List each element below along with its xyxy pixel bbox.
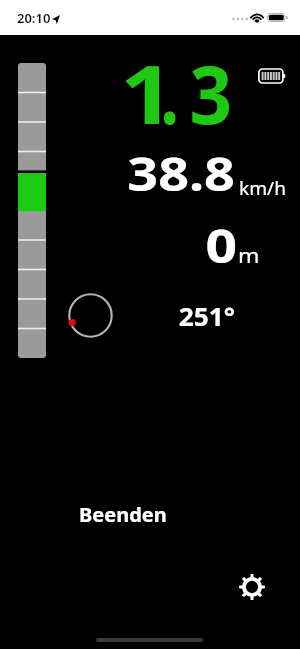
staticText: 1 xyxy=(108,38,174,147)
button[interactable]: Beenden xyxy=(62,500,184,528)
button[interactable]: Battery level xyxy=(256,66,288,86)
staticText: 0 xyxy=(206,214,238,277)
staticText: Beenden xyxy=(79,501,167,528)
staticText: km/h xyxy=(239,176,287,201)
staticText: 3 xyxy=(180,38,232,147)
staticText: 38.8 xyxy=(127,142,235,205)
button[interactable]: Compass heading 251 degrees xyxy=(65,290,116,341)
button[interactable]: Settings xyxy=(235,570,269,604)
staticText: 20:10 xyxy=(17,9,51,27)
staticText: m xyxy=(238,242,260,269)
staticText: 251° xyxy=(114,299,235,333)
staticText: . xyxy=(133,38,179,147)
button[interactable]: Altitude gauge xyxy=(18,63,46,358)
